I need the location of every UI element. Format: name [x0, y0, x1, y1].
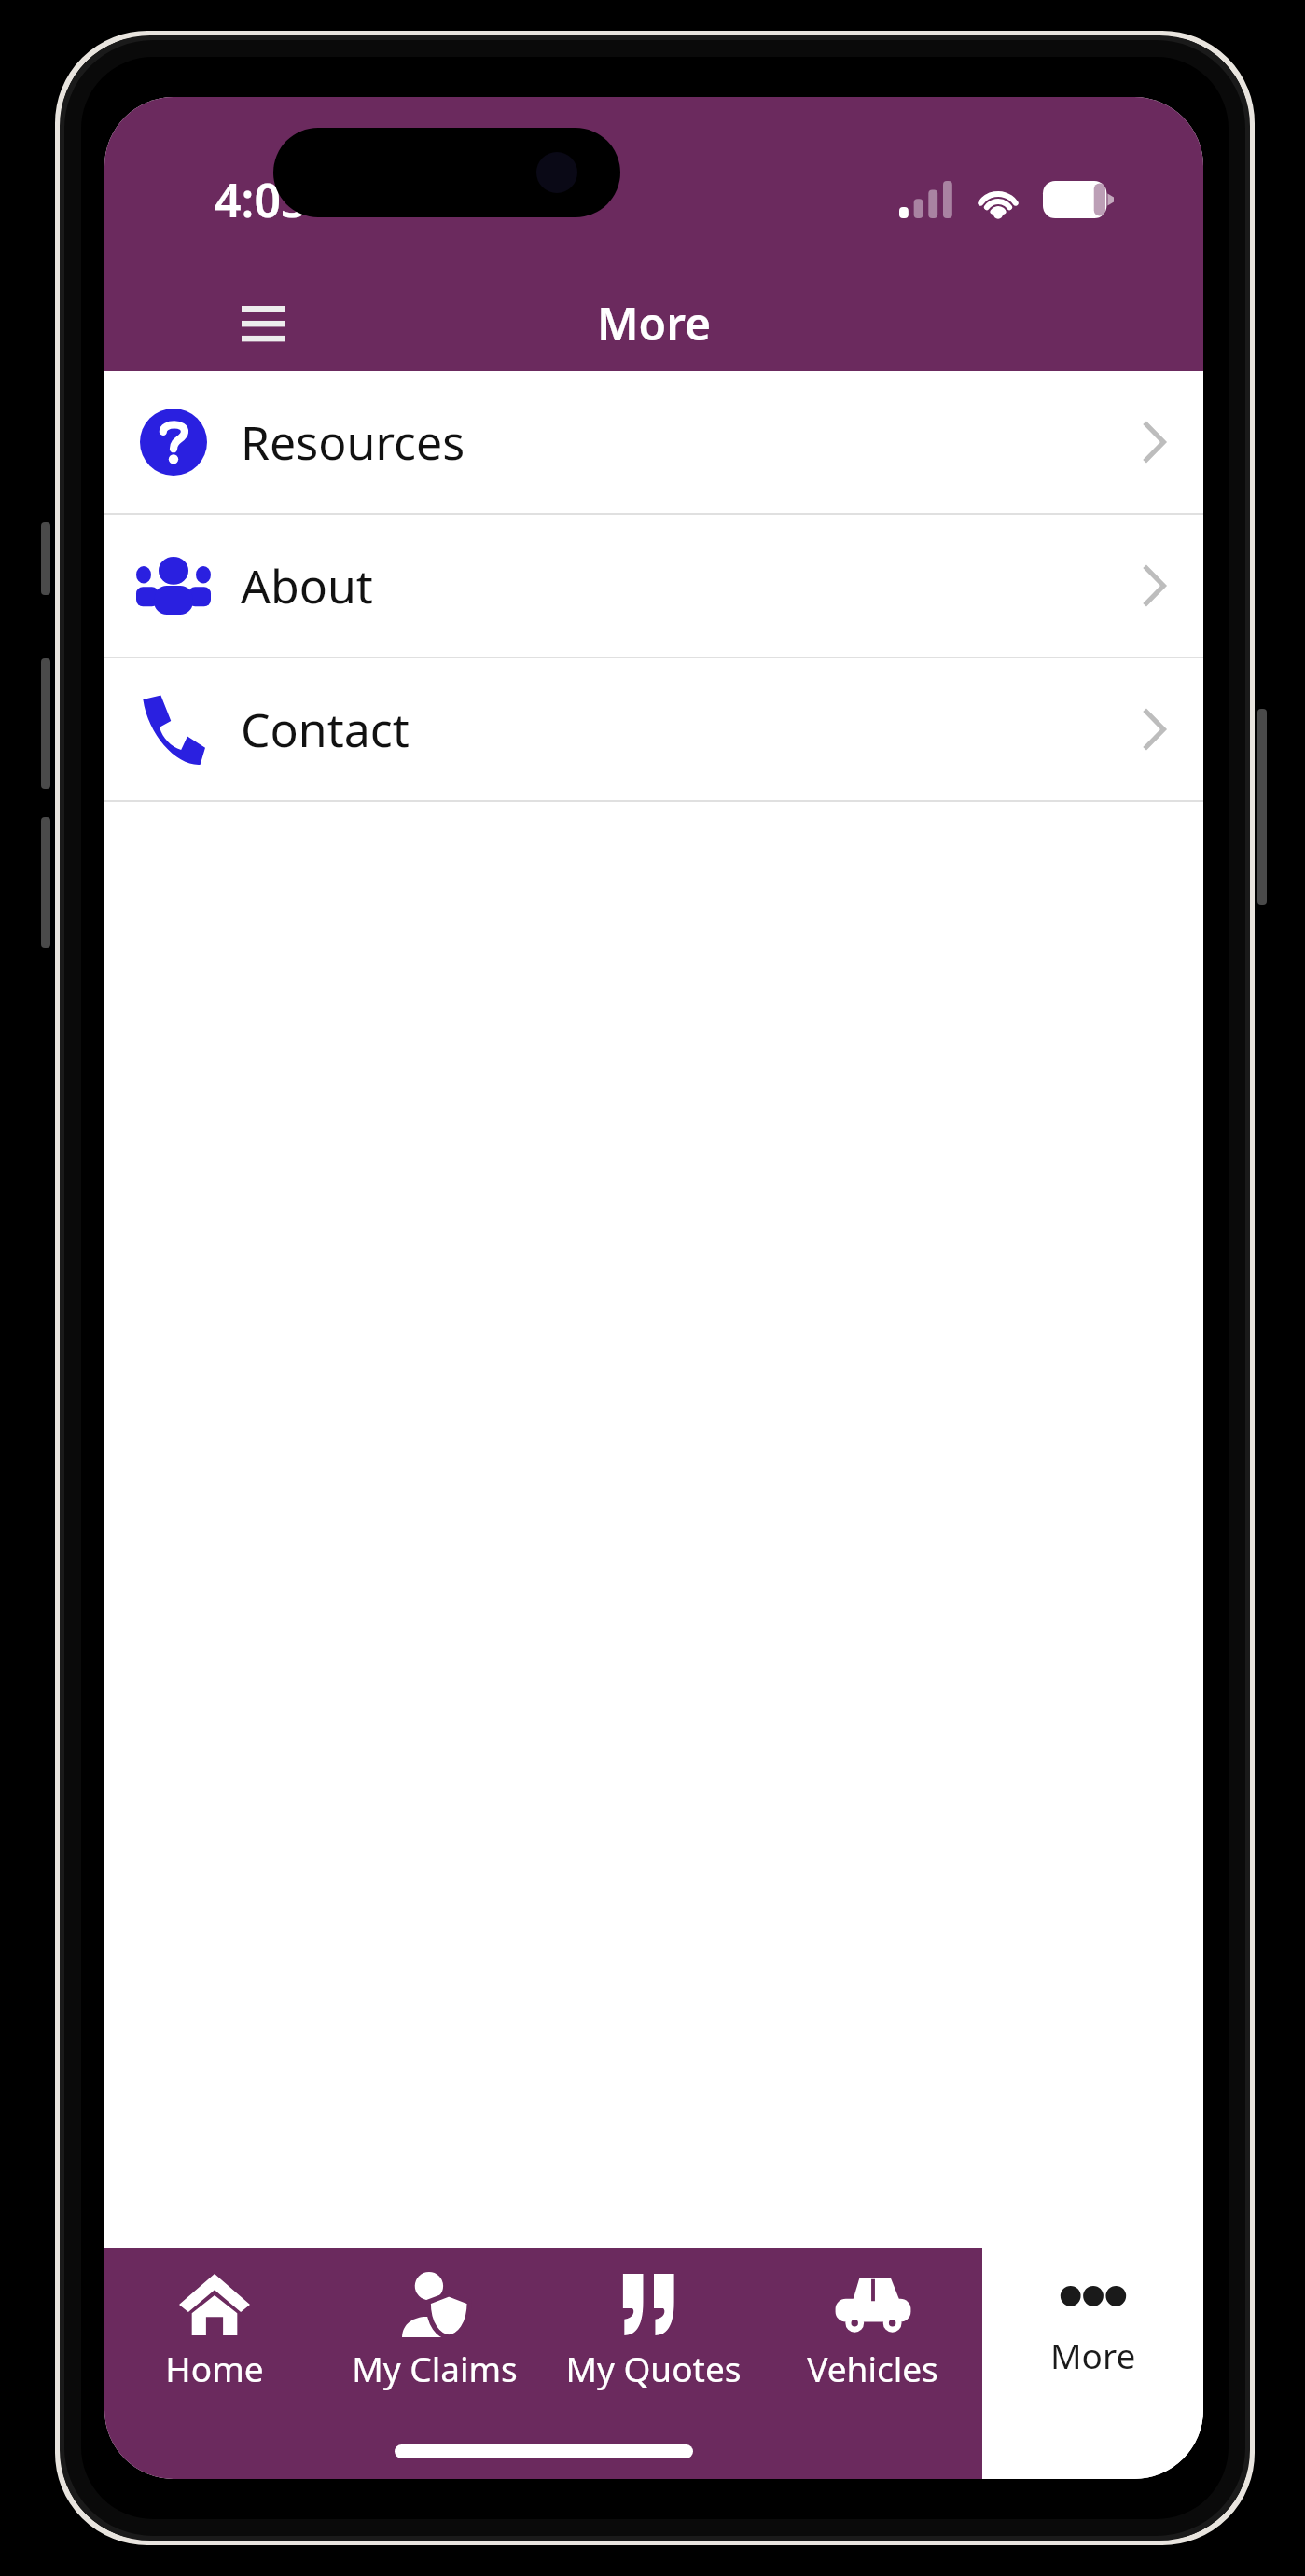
staticText: My Quotes [565, 2345, 742, 2391]
button[interactable]: Resources [104, 371, 1203, 513]
button[interactable]: More [982, 2248, 1203, 2479]
button[interactable]: About [104, 515, 1203, 657]
button[interactable]: Contact [104, 658, 1203, 800]
staticText: Contact [241, 698, 410, 761]
button[interactable]: Menu [228, 288, 298, 359]
staticText: More [597, 293, 712, 353]
staticText: My Claims [352, 2345, 518, 2391]
button[interactable]: Home [104, 2268, 325, 2395]
staticText: Vehicles [807, 2345, 938, 2391]
staticText: 4:03 [215, 168, 308, 231]
staticText: More [1050, 2332, 1136, 2378]
button[interactable]: Vehicles [763, 2268, 982, 2395]
staticText: Resources [241, 410, 465, 474]
staticText: Home [165, 2345, 264, 2391]
button[interactable]: My Claims [325, 2268, 544, 2395]
staticText: About [241, 554, 373, 617]
button[interactable]: My Quotes [544, 2268, 763, 2395]
